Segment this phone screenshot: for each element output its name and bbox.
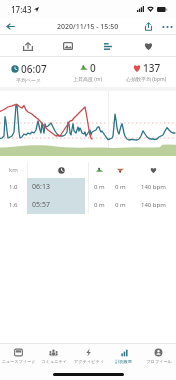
- staticText: 0 m: [94, 201, 105, 209]
- button[interactable]: Details: [96, 35, 120, 57]
- button[interactable]: 1.0: [0, 178, 176, 196]
- staticText: 1.0: [9, 183, 18, 191]
- button[interactable]: Share: [138, 18, 158, 35]
- staticText: 計測履歴: [115, 359, 132, 364]
- staticText: 上昇高度 (m): [73, 76, 102, 83]
- button[interactable]: Export: [16, 35, 40, 57]
- staticText: km: [9, 166, 18, 174]
- button[interactable]: Favorite: [136, 35, 160, 57]
- staticText: 0: [90, 61, 96, 75]
- staticText: 140 bpm: [141, 201, 166, 209]
- staticText: 0 m: [115, 201, 126, 209]
- staticText: 0 m: [115, 183, 126, 191]
- staticText: 心拍数平均 (bpm): [126, 76, 167, 83]
- button[interactable]: Photos: [56, 35, 80, 57]
- staticText: 2020/11/15 - 15:50: [57, 22, 119, 32]
- staticText: 05:57: [32, 200, 50, 210]
- button[interactable]: More options: [158, 18, 176, 35]
- button[interactable]: 計測履歴: [106, 344, 141, 368]
- staticText: プロフィール: [146, 359, 172, 364]
- button[interactable]: コミュニティ: [36, 344, 71, 368]
- button[interactable]: 1.6: [0, 196, 176, 214]
- button[interactable]: プロフィール: [141, 344, 176, 368]
- staticText: 140 bpm: [141, 183, 166, 191]
- staticText: コミュニティ: [41, 359, 67, 364]
- staticText: 06:13: [32, 182, 50, 192]
- staticText: 1.6: [9, 201, 18, 209]
- button[interactable]: アクティビティ: [71, 344, 106, 368]
- button[interactable]: Back: [0, 18, 20, 35]
- staticText: 06:07: [21, 62, 47, 76]
- staticText: 17:43: [11, 4, 32, 15]
- staticText: ニュースフィード: [1, 359, 36, 364]
- staticText: アクティビティ: [74, 359, 104, 364]
- staticText: 137: [143, 61, 161, 75]
- staticText: 平均ペース: [16, 77, 42, 83]
- button[interactable]: ニュースフィード: [0, 344, 36, 368]
- staticText: 0 m: [94, 183, 105, 191]
